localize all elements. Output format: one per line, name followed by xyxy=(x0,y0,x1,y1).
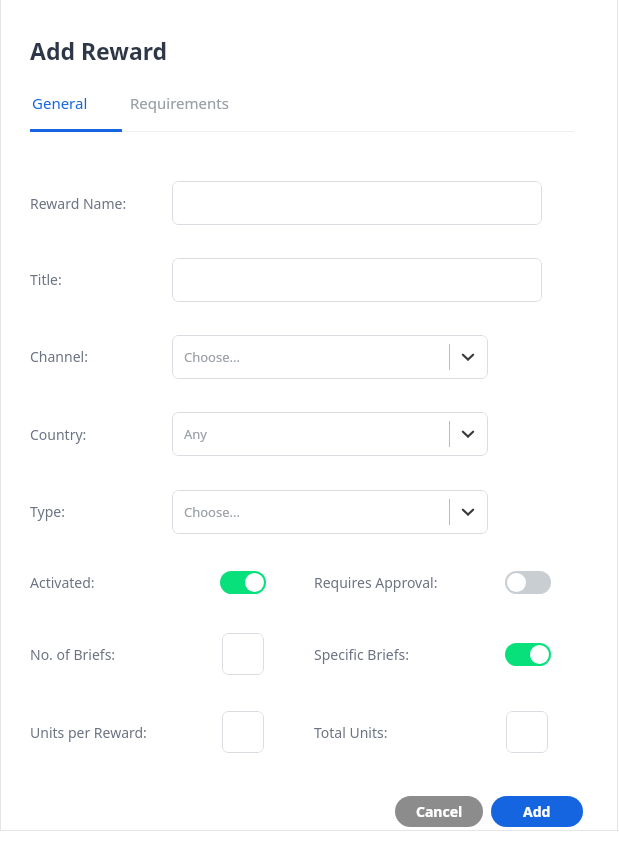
staticText: Any xyxy=(184,425,207,443)
staticText: Channel: xyxy=(30,347,88,366)
staticText: Add Reward xyxy=(30,35,168,66)
staticText: Choose... xyxy=(184,348,240,366)
button[interactable]: Number field xyxy=(222,633,264,675)
staticText: Activated: xyxy=(30,573,95,592)
staticText: Type: xyxy=(30,502,65,521)
staticText: Cancel xyxy=(416,802,463,821)
button[interactable]: Add xyxy=(491,796,583,827)
staticText: Choose... xyxy=(184,503,240,521)
button[interactable]: Number field xyxy=(222,711,264,753)
staticText: Units per Reward: xyxy=(30,723,147,742)
button[interactable]: Text field xyxy=(172,258,542,302)
staticText: Reward Name: xyxy=(30,194,127,213)
button[interactable]: Choose... xyxy=(172,490,488,534)
button[interactable]: General xyxy=(30,89,90,117)
staticText: Country: xyxy=(30,425,87,444)
staticText: Requirements xyxy=(130,93,229,113)
staticText: Specific Briefs: xyxy=(314,645,409,664)
button[interactable]: Toggle on xyxy=(220,571,266,594)
button[interactable]: Toggle on xyxy=(505,643,551,666)
button[interactable]: Requirements xyxy=(128,89,231,117)
staticText: No. of Briefs: xyxy=(30,645,116,664)
button[interactable]: Any xyxy=(172,412,488,456)
staticText: Requires Approval: xyxy=(314,573,438,592)
staticText: General xyxy=(32,93,88,113)
button[interactable]: Toggle off xyxy=(505,571,551,594)
button[interactable]: Text field xyxy=(172,181,542,225)
staticText: Add xyxy=(523,802,551,821)
button[interactable]: Number field xyxy=(506,711,548,753)
staticText: Title: xyxy=(30,270,62,289)
button[interactable]: Cancel xyxy=(395,796,483,827)
staticText: Total Units: xyxy=(314,723,388,742)
button[interactable]: Choose... xyxy=(172,335,488,379)
